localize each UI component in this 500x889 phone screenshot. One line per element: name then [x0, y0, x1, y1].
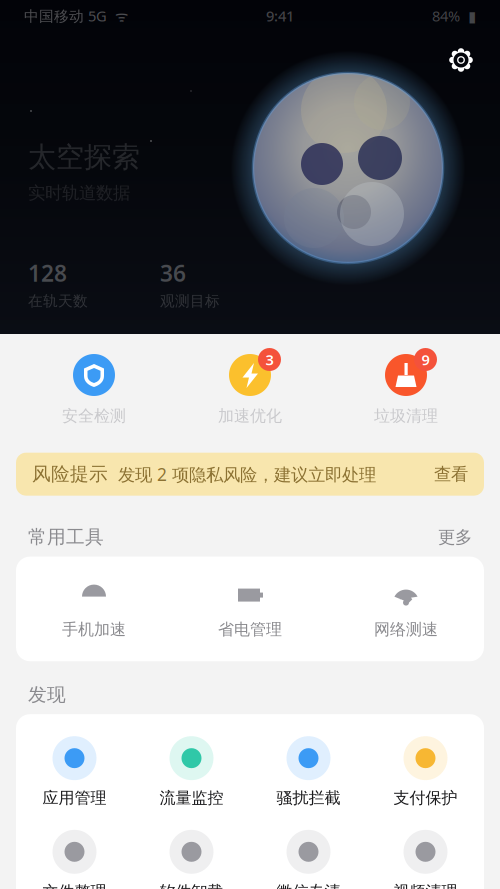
button[interactable]: 骚扰拦截 [250, 730, 367, 814]
staticText: 常用工具 [28, 526, 104, 549]
staticText: 3 [265, 350, 273, 369]
button[interactable]: 应用管理 [16, 730, 133, 814]
staticText: 软件卸载 [159, 882, 223, 889]
staticText: 视频清理 [393, 882, 457, 889]
staticText: 风险提示 [32, 463, 108, 486]
button[interactable]: 安全检测 [16, 351, 172, 428]
button[interactable]: 省电管理 [172, 573, 328, 645]
staticText: 太空探索 [28, 140, 140, 174]
staticText: 9 [421, 350, 429, 369]
staticText: 微信专清 [276, 882, 340, 889]
staticText: 128 [28, 258, 67, 288]
staticText: 省电管理 [218, 620, 282, 639]
button[interactable]: 3 [172, 351, 328, 428]
staticText: 发现 [28, 683, 66, 706]
staticText: 36 [160, 258, 186, 288]
button[interactable]: 支付保护 [367, 730, 484, 814]
button[interactable]: 更多 [438, 526, 472, 548]
button[interactable]: 软件卸载 [133, 824, 250, 889]
button[interactable]: 微信专清 [250, 824, 367, 889]
button[interactable]: 视频清理 [367, 824, 484, 889]
button[interactable]: 9 [328, 351, 484, 428]
staticText: 流量监控 [159, 788, 223, 808]
staticText: 文件整理 [42, 882, 106, 889]
staticText: 查看 [434, 463, 468, 485]
staticText: 9:41 [266, 6, 294, 25]
button[interactable]: 手机加速 [16, 573, 172, 645]
button[interactable]: 风险提示 [16, 453, 484, 496]
staticText: 实时轨道数据 [28, 182, 130, 204]
button[interactable]: 流量监控 [133, 730, 250, 814]
staticText: 更多 [438, 526, 472, 548]
staticText: 网络测速 [374, 620, 438, 639]
button[interactable]: 文件整理 [16, 824, 133, 889]
staticText: 安全检测 [62, 406, 126, 426]
staticText: 骚扰拦截 [276, 788, 340, 808]
staticText: 加速优化 [218, 406, 282, 426]
button[interactable]: Settings [447, 46, 475, 74]
staticText: 84% ▮ [432, 6, 476, 25]
staticText: 在轨天数 [28, 292, 88, 310]
staticText: 发现 2 项隐私风险，建议立即处理 [118, 463, 376, 486]
staticText: 支付保护 [393, 788, 457, 808]
staticText: 垃圾清理 [374, 406, 438, 426]
staticText: 观测目标 [160, 292, 220, 310]
staticText: 应用管理 [42, 788, 106, 808]
staticText: 中国移动 5G ᯤ [24, 6, 128, 25]
staticText: 手机加速 [62, 620, 126, 639]
button[interactable]: 网络测速 [328, 573, 484, 645]
